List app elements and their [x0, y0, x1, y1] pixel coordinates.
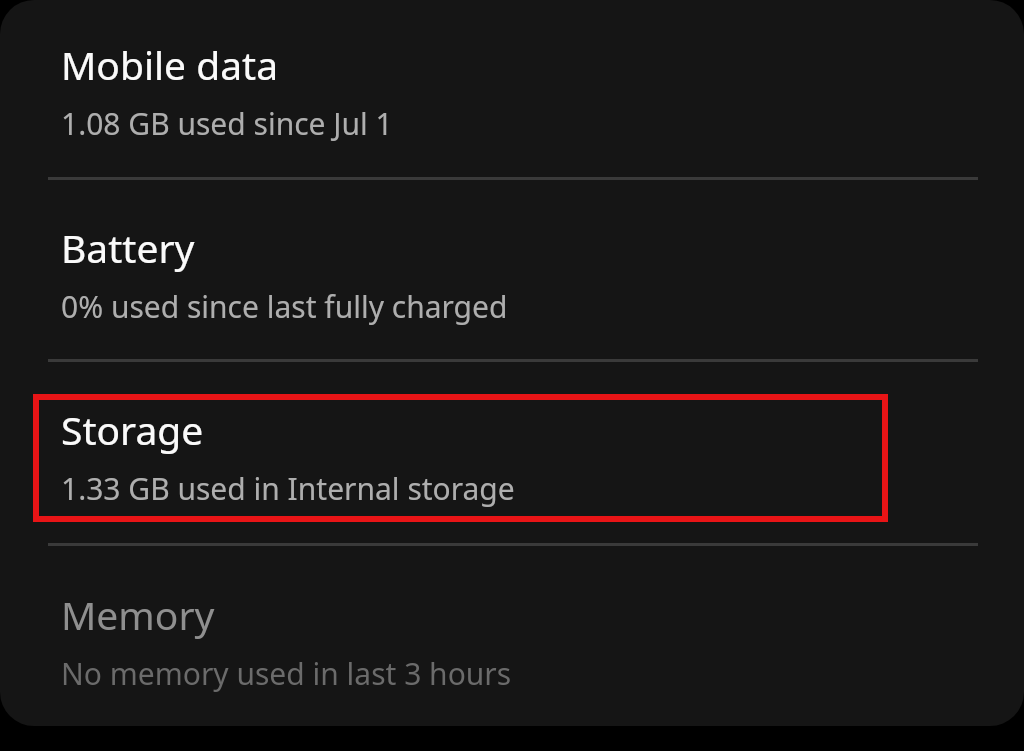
- staticText: Battery: [61, 221, 195, 274]
- button[interactable]: Mobile data: [0, 0, 1024, 178]
- button[interactable]: Battery: [0, 180, 1024, 360]
- staticText: Storage: [61, 403, 204, 456]
- staticText: Memory: [61, 588, 215, 641]
- staticText: No memory used in last 3 hours: [61, 653, 512, 694]
- staticText: 1.33 GB used in Internal storage: [61, 468, 515, 509]
- staticText: 0% used since last fully charged: [61, 286, 508, 327]
- staticText: 1.08 GB used since Jul 1: [61, 103, 393, 144]
- staticText: Mobile data: [61, 38, 279, 91]
- button[interactable]: Memory: [0, 546, 1024, 722]
- button[interactable]: Storage: [0, 362, 1024, 544]
